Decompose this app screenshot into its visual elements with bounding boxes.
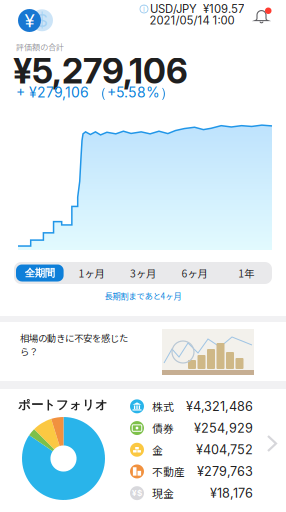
button[interactable]: 6ヶ月 (169, 262, 220, 284)
staticText: 現金 (152, 485, 174, 501)
staticText: 長期割まであと4ヶ月 (104, 290, 181, 302)
button[interactable]: 相場の動きに不安を感じた ら？ (0, 322, 286, 381)
staticText: i (143, 5, 145, 13)
staticText: ¥404,752 (196, 442, 253, 457)
staticText: + ¥279,106 （+5.58%） (16, 84, 174, 102)
button[interactable]: 長期割まであと4ヶ月 (0, 286, 286, 306)
staticText: ¥$ (132, 488, 142, 498)
button[interactable]: 1ヶ月 (66, 262, 117, 284)
button[interactable]: Accounts (18, 9, 54, 32)
staticText: 株式 (152, 399, 174, 414)
button[interactable]: 1年 (220, 262, 272, 284)
staticText: 2021/05/14 1:00 (149, 14, 234, 27)
staticText: 評価額の合計 (16, 41, 64, 53)
staticText: 1年 (238, 265, 254, 281)
staticText: ¥5,279,106 (13, 50, 188, 92)
staticText: ¥18,176 (210, 485, 253, 501)
staticText: 相場の動きに不安を感じた ら？ (20, 331, 128, 358)
staticText: USD/JPY ¥109.57 (150, 2, 244, 16)
staticText: ¥254,929 (194, 420, 253, 436)
staticText: 6ヶ月 (182, 265, 208, 281)
staticText: ポートフォリオ (18, 397, 108, 413)
button[interactable]: ポートフォリオ (0, 389, 286, 512)
staticText: 3ヶ月 (130, 265, 156, 281)
staticText: ¥ (24, 9, 34, 32)
staticText: 全期間 (25, 266, 55, 279)
staticText: 債券 (152, 420, 174, 436)
staticText: ¥4,321,486 (186, 399, 253, 414)
button[interactable]: Notifications (251, 7, 272, 26)
button[interactable]: i (132, 3, 252, 26)
button[interactable]: 全期間 (14, 262, 66, 284)
staticText: 金 (152, 442, 163, 457)
button[interactable]: 3ヶ月 (117, 262, 169, 284)
staticText: ¥279,763 (197, 464, 253, 479)
staticText: $ (36, 9, 48, 32)
staticText: 1ヶ月 (78, 265, 104, 281)
staticText: 不動産 (152, 464, 185, 479)
